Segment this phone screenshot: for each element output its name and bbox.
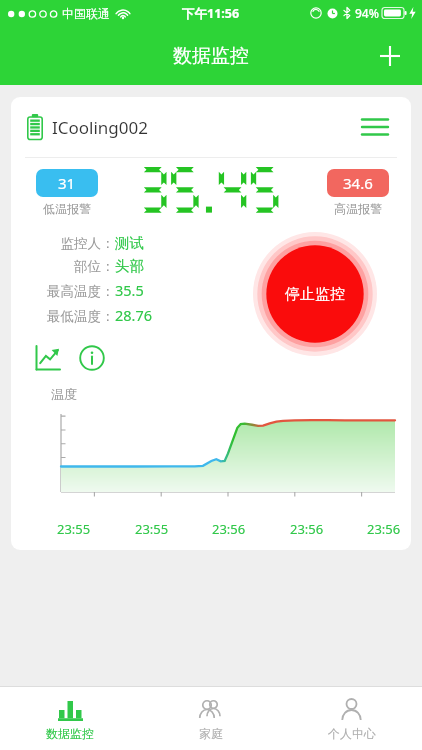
staticText: 低温报警 bbox=[43, 201, 91, 216]
staticText: 部位 bbox=[74, 258, 101, 275]
staticText: ： bbox=[101, 258, 115, 275]
staticText: 个人中心 bbox=[328, 726, 376, 741]
button[interactable]: 个人中心 bbox=[281, 687, 422, 750]
staticText: 最高温度 bbox=[47, 283, 101, 300]
button[interactable]: 数据监控 bbox=[0, 687, 140, 750]
staticText: 35.5 bbox=[115, 280, 144, 300]
staticText: 下午11:56 bbox=[182, 5, 240, 22]
button[interactable]: 家庭 bbox=[140, 687, 281, 750]
staticText: 停止监控 bbox=[285, 285, 345, 304]
staticText: 34.6 bbox=[343, 173, 373, 193]
button[interactable]: 34.6 bbox=[327, 169, 389, 197]
button[interactable]: 信息 bbox=[73, 339, 111, 376]
button[interactable]: 31 bbox=[36, 169, 98, 197]
staticText: 温度 bbox=[51, 386, 77, 402]
staticText: ： bbox=[101, 308, 115, 325]
staticText: 数据监控 bbox=[46, 726, 94, 741]
staticText: 数据监控 bbox=[173, 44, 249, 68]
staticText: ICooling002 bbox=[52, 116, 148, 139]
button[interactable]: 添加 bbox=[368, 34, 412, 78]
staticText: 23:55 bbox=[57, 520, 91, 538]
staticText: 家庭 bbox=[199, 726, 223, 741]
staticText: 头部 bbox=[115, 257, 144, 275]
staticText: 28.76 bbox=[115, 305, 153, 325]
staticText: ： bbox=[101, 283, 115, 300]
staticText: 中国联通 bbox=[62, 6, 110, 21]
staticText: 23:56 bbox=[367, 520, 401, 538]
staticText: 23:55 bbox=[135, 520, 169, 538]
staticText: 监控人 bbox=[60, 235, 101, 252]
staticText: 最低温度 bbox=[47, 308, 101, 325]
staticText: 测试 bbox=[115, 234, 144, 252]
staticText: ： bbox=[101, 235, 115, 252]
staticText: 高温报警 bbox=[334, 201, 382, 216]
staticText: 94% bbox=[355, 5, 379, 21]
button[interactable]: 趋势图 bbox=[29, 339, 67, 376]
button[interactable]: 停止监控 bbox=[253, 232, 377, 356]
button[interactable]: 菜单 bbox=[355, 107, 395, 147]
staticText: 23:56 bbox=[290, 520, 324, 538]
staticText: 23:56 bbox=[212, 520, 246, 538]
staticText: 31 bbox=[58, 173, 76, 193]
